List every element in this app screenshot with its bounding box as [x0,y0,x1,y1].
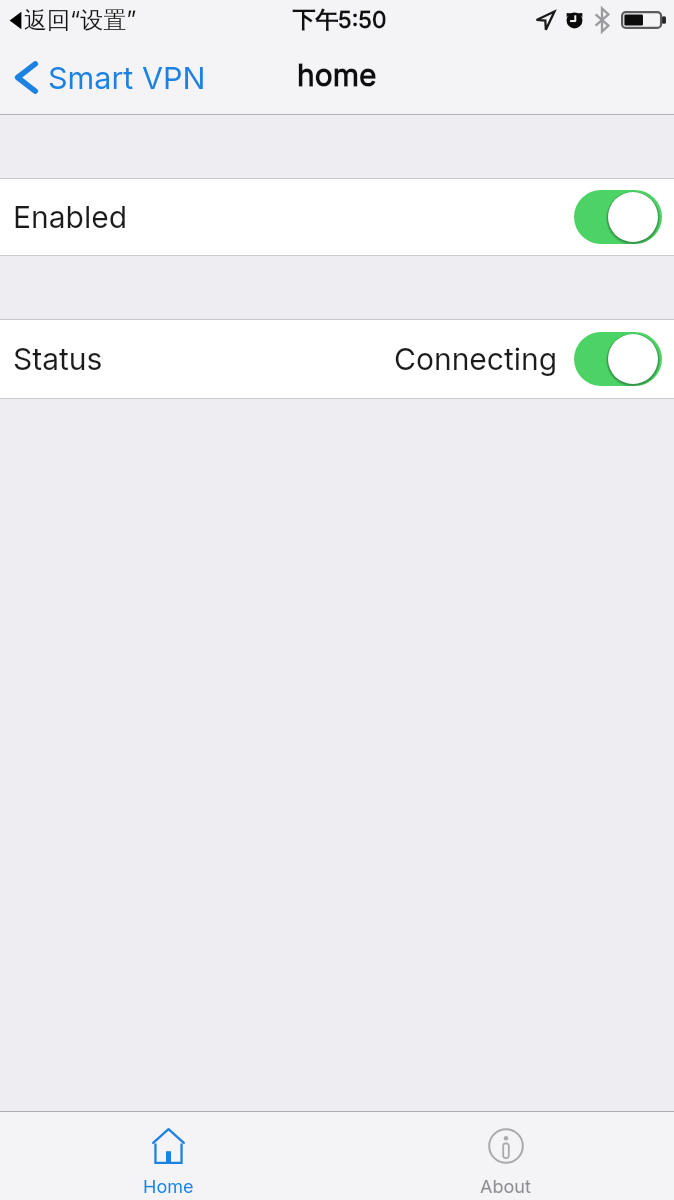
staticText: Enabled [13,199,128,235]
staticText: About [480,1176,531,1198]
button[interactable]: Home [0,1112,337,1200]
staticText: Home [143,1176,194,1198]
button[interactable]: About [337,1112,674,1200]
staticText: home [297,57,377,93]
staticText: 返回“设置” [24,6,137,35]
staticText: Status [13,341,103,377]
staticText: Connecting [394,341,558,377]
button[interactable]: Toggle switch [574,190,662,244]
staticText: 下午5:50 [292,6,387,35]
button[interactable]: Enabled [0,178,674,256]
button[interactable]: Status [0,319,674,399]
button[interactable]: Back to Smart VPN [0,51,216,104]
button[interactable]: Toggle switch [574,332,662,386]
staticText: Smart VPN [48,59,206,96]
